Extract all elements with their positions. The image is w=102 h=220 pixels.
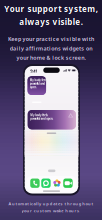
button[interactable]: Phone <box>30 178 40 188</box>
staticText: daily affirmations widgets on <box>10 45 92 52</box>
staticText: your home & lock screen. <box>17 54 85 61</box>
staticText: always visible. <box>19 16 83 27</box>
staticText: your custom wake hours. <box>21 208 80 213</box>
staticText: Automatically updates throughout <box>8 201 93 206</box>
staticText: Your support system, <box>4 3 98 14</box>
staticText: Keep your practice visible with <box>8 35 94 43</box>
button[interactable]: Photos <box>52 178 62 188</box>
button[interactable]: WhatsApp <box>41 178 51 188</box>
button[interactable]: FaceTime <box>63 178 73 188</box>
staticText: 9:41 <box>30 68 37 73</box>
staticText: My body feels powerful and open. <box>30 78 47 89</box>
staticText: My body feels powerful and open. <box>30 113 54 120</box>
button[interactable]: Daily affirmation widget, medium <box>28 110 76 129</box>
button[interactable]: Daily affirmation widget, small <box>28 76 46 95</box>
